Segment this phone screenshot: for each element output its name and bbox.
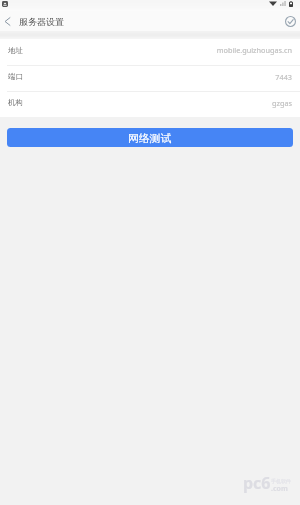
- button[interactable]: Back: [0, 11, 69, 31]
- button[interactable]: 地址: [0, 39, 300, 65]
- staticText: gzgas: [31, 98, 292, 108]
- button[interactable]: 机构: [0, 92, 300, 117]
- staticText: 手机软件: [271, 478, 291, 484]
- staticText: 端口: [8, 72, 23, 81]
- staticText: .com: [271, 484, 288, 494]
- staticText: mobile.guizhougas.cn: [31, 45, 292, 55]
- staticText: 机构: [8, 98, 23, 107]
- staticText: 地址: [8, 46, 23, 55]
- staticText: 7443: [31, 72, 292, 82]
- button[interactable]: Confirm: [280, 11, 300, 31]
- staticText: 网络测试: [128, 132, 172, 146]
- button[interactable]: 网络测试: [7, 128, 293, 147]
- staticText: 服务器设置: [19, 16, 64, 27]
- button[interactable]: 端口: [0, 66, 300, 91]
- staticText: pc6: [243, 472, 271, 494]
